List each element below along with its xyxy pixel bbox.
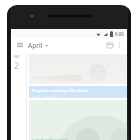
button[interactable]: Lunch with Daniel (29, 100, 127, 140)
button[interactable]: More options (115, 41, 123, 49)
button[interactable]: Prep for meeting with Anne (29, 86, 127, 98)
button[interactable]: Open navigation menu (15, 40, 25, 50)
staticText: Prep for meeting with Anne (32, 88, 88, 94)
staticText: 9:00 – 10:00 AM (32, 95, 57, 98)
button[interactable]: Coffee chat with Jeremy (29, 54, 127, 84)
staticText: April (28, 41, 43, 50)
staticText: 6:00 (115, 31, 124, 37)
staticText: Coffee chat with Jeremy (32, 75, 80, 81)
staticText: SAT (14, 54, 20, 59)
button[interactable]: April (28, 41, 48, 50)
staticText: 2 (14, 59, 20, 71)
button[interactable]: Jump to today (105, 40, 115, 50)
staticText: Lunch with Daniel (32, 137, 68, 140)
